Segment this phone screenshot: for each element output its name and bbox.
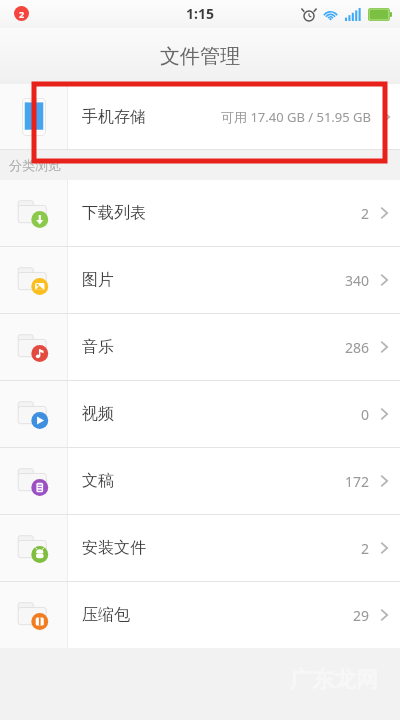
button[interactable]: 图片 (0, 247, 400, 313)
staticText: 音乐 (82, 337, 114, 357)
button[interactable]: 文稿 (0, 448, 400, 514)
button[interactable]: 压缩包 (0, 582, 400, 648)
staticText: 视频 (82, 404, 114, 424)
staticText: 29 (353, 606, 370, 625)
staticText: 2 (361, 539, 370, 558)
staticText: 文稿 (82, 471, 114, 491)
button[interactable]: 下载列表 (0, 180, 400, 246)
button[interactable]: 视频 (0, 381, 400, 447)
button[interactable]: 音乐 (0, 314, 400, 380)
staticText: 文件管理 (160, 44, 240, 69)
staticText: 172 (345, 472, 370, 491)
staticText: 安装文件 (82, 538, 146, 558)
staticText: 压缩包 (82, 605, 130, 625)
staticText: 图片 (82, 270, 114, 290)
button[interactable]: 安装文件 (0, 515, 400, 581)
staticText: 2 (19, 8, 25, 20)
staticText: 2 (361, 204, 370, 223)
staticText: 分类浏览 (9, 157, 61, 173)
staticText: 0 (361, 405, 370, 424)
staticText: 手机存储 (82, 107, 146, 127)
button[interactable]: 手机存储 (0, 84, 400, 149)
staticText: 286 (345, 338, 370, 357)
staticText: 下载列表 (82, 203, 146, 223)
staticText: 340 (345, 271, 370, 290)
staticText: 可用 17.40 GB / 51.95 GB (221, 108, 372, 126)
staticText: 1:15 (186, 4, 214, 23)
